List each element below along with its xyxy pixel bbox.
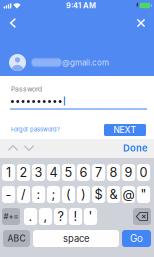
staticText: 2 — [20, 165, 28, 180]
staticText: 9:41 AM — [66, 1, 96, 10]
button[interactable]: Delete — [133, 208, 151, 225]
button[interactable]: Previous field — [3, 139, 23, 157]
button[interactable]: " — [137, 186, 150, 203]
button[interactable]: 8 — [107, 164, 120, 181]
button[interactable]: 9 — [122, 164, 135, 181]
button[interactable]: @gmail.com — [9, 53, 149, 71]
staticText: 1 — [6, 165, 11, 180]
button[interactable]: $ — [92, 186, 105, 203]
button[interactable]: Forgot password? — [11, 123, 81, 135]
button[interactable]: Letters — [3, 230, 30, 247]
button[interactable]: 1 — [2, 164, 15, 181]
button[interactable]: 6 — [77, 164, 90, 181]
staticText: 7 — [95, 165, 102, 180]
button[interactable]: @ — [122, 186, 135, 203]
staticText: " — [141, 187, 147, 202]
button[interactable]: 2 — [17, 164, 30, 181]
button[interactable]: ( — [62, 186, 75, 203]
button[interactable]: , — [39, 208, 52, 225]
button[interactable]: Go — [122, 230, 151, 247]
button[interactable]: : — [32, 186, 45, 203]
staticText: Forgot password? — [11, 126, 60, 133]
staticText: 8 — [109, 165, 117, 180]
staticText: 4 — [49, 165, 57, 180]
button[interactable]: / — [17, 186, 30, 203]
button[interactable]: Next field — [19, 139, 39, 157]
button[interactable]: - — [2, 186, 15, 203]
button[interactable]: More symbols — [2, 208, 20, 225]
staticText: / — [21, 187, 26, 202]
staticText: Password — [11, 85, 42, 93]
button[interactable]: ) — [77, 186, 90, 203]
staticText: $ — [94, 187, 102, 202]
button[interactable]: 4 — [47, 164, 60, 181]
staticText: ( — [66, 187, 71, 202]
button[interactable]: ! — [69, 208, 82, 225]
button[interactable]: 5 — [62, 164, 75, 181]
button[interactable]: & — [107, 186, 120, 203]
button[interactable]: NEXT — [104, 124, 146, 136]
staticText: Go — [130, 232, 143, 244]
staticText: : — [36, 187, 40, 202]
staticText: , — [43, 209, 47, 224]
staticText: @gmail.com — [62, 58, 109, 67]
button[interactable]: 0 — [137, 164, 150, 181]
staticText: - — [6, 187, 12, 202]
staticText: @ — [123, 187, 135, 202]
button[interactable]: Back — [1, 12, 25, 34]
staticText: ! — [73, 209, 77, 224]
button[interactable]: space — [33, 230, 119, 247]
staticText: space — [63, 233, 89, 244]
button[interactable]: 3 — [32, 164, 45, 181]
button[interactable]: Done — [118, 140, 148, 156]
staticText: 3 — [34, 165, 42, 180]
button[interactable]: . — [24, 208, 37, 225]
staticText: NEXT — [113, 125, 136, 135]
staticText: 5 — [64, 165, 72, 180]
staticText: ? — [57, 209, 63, 224]
staticText: ' — [88, 209, 92, 224]
staticText: ) — [81, 187, 86, 202]
staticText: 9 — [125, 165, 133, 180]
staticText: 0 — [140, 165, 148, 180]
staticText: Done — [123, 142, 148, 154]
button[interactable]: ' — [84, 208, 97, 225]
button[interactable]: 7 — [92, 164, 105, 181]
button[interactable]: ; — [47, 186, 60, 203]
staticText: 6 — [79, 165, 87, 180]
button[interactable]: ? — [54, 208, 67, 225]
staticText: #+= — [3, 212, 18, 221]
staticText: ABC — [7, 233, 25, 244]
staticText: . — [29, 209, 33, 224]
staticText: ; — [51, 187, 55, 202]
staticText: & — [109, 187, 117, 202]
button[interactable]: Close — [129, 12, 153, 34]
